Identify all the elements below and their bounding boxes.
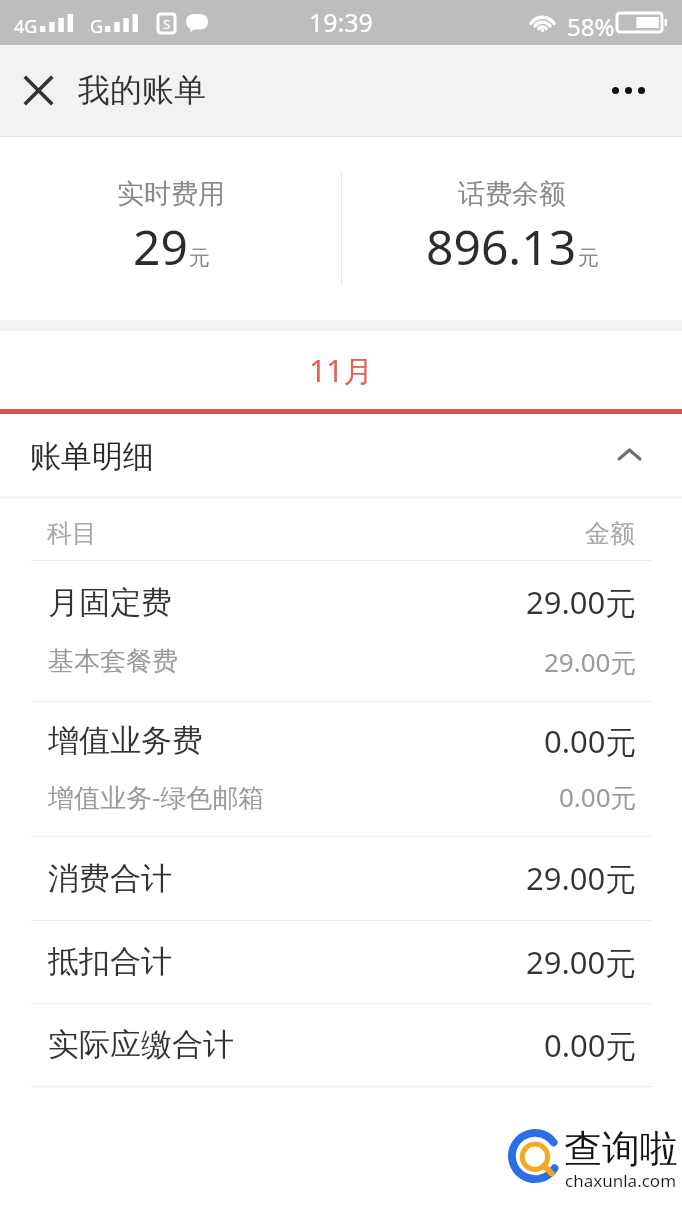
staticText: 话费余额 [458, 177, 566, 211]
staticText: 抵扣合计 [48, 942, 172, 981]
staticText: 查询啦 [564, 1125, 678, 1173]
staticText: 月固定费 [48, 583, 172, 622]
staticText: 增值业务-绿色邮箱 [48, 779, 265, 815]
button[interactable]: 增值业务费 [0, 701, 682, 836]
staticText: 11月 [309, 350, 374, 391]
button[interactable]: 消费合计 [0, 836, 682, 920]
button[interactable]: 账单明细 [0, 414, 682, 497]
staticText: 金额 [585, 518, 635, 549]
staticText: 19:39 [309, 5, 373, 39]
staticText: 29.00元 [526, 941, 637, 983]
staticText: 我的账单 [78, 70, 206, 110]
staticText: 实际应缴合计 [48, 1025, 234, 1064]
staticText: 0.00元 [559, 779, 637, 815]
button[interactable]: More options [586, 45, 682, 136]
staticText: 29.00元 [544, 644, 637, 680]
staticText: 实时费用 [117, 177, 225, 211]
staticText: chaxunla.com [565, 1169, 677, 1192]
staticText: 896.13 [426, 214, 577, 279]
staticText: G [90, 14, 104, 39]
staticText: 科目 [47, 518, 97, 549]
button[interactable]: 抵扣合计 [0, 920, 682, 1003]
staticText: 4G [14, 14, 38, 39]
staticText: 元 [189, 245, 210, 271]
button[interactable]: 月固定费 [0, 560, 682, 701]
staticText: 0.00元 [544, 720, 637, 762]
staticText: 元 [578, 245, 599, 271]
button[interactable]: Close [0, 45, 76, 136]
staticText: 基本套餐费 [48, 645, 178, 678]
button[interactable]: 实际应缴合计 [0, 1003, 682, 1086]
staticText: 58% [567, 10, 615, 43]
staticText: 0.00元 [544, 1024, 637, 1066]
staticText: 消费合计 [48, 859, 172, 898]
staticText: 账单明细 [30, 437, 154, 476]
staticText: 29 [133, 214, 188, 279]
staticText: 29.00元 [526, 581, 637, 623]
staticText: 29.00元 [526, 857, 637, 899]
staticText: S [163, 15, 171, 33]
staticText: 增值业务费 [48, 721, 203, 760]
